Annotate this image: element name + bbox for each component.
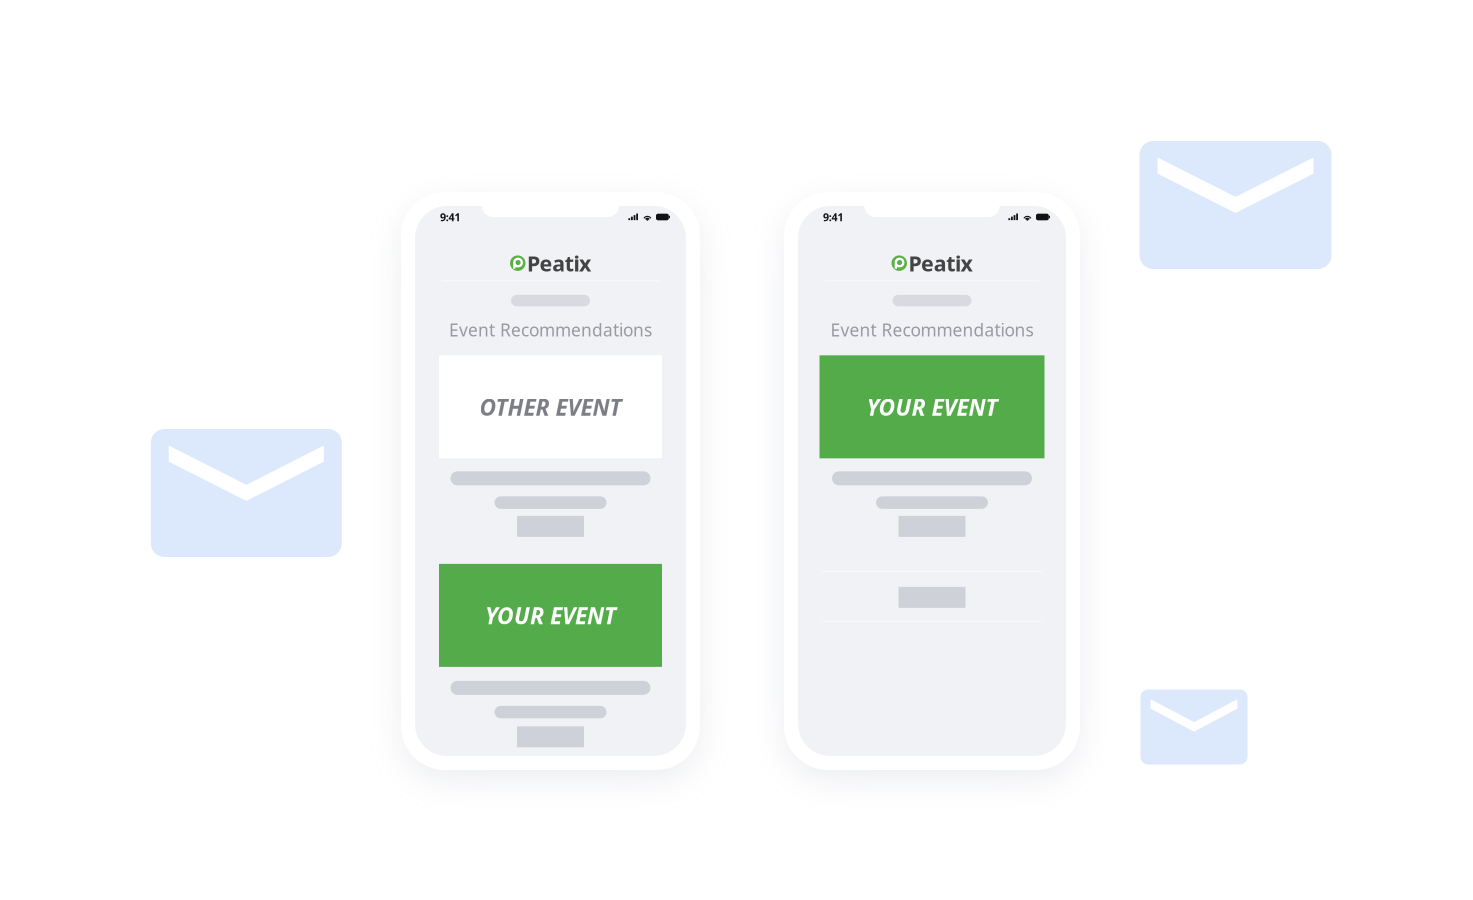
staticText: Peatix [527,249,591,277]
staticText: YOUR EVENT [485,600,616,630]
staticText: YOUR EVENT [866,392,997,422]
button[interactable]: YOUR EVENT [439,564,662,667]
button[interactable]: YOUR EVENT [819,355,1044,458]
staticText: Event Recommendations [449,318,652,341]
staticText: OTHER EVENT [479,392,621,422]
staticText: 9:41 [823,210,843,224]
staticText: 9:41 [440,210,460,224]
staticText: Peatix [908,249,972,277]
staticText: Event Recommendations [830,318,1033,341]
button[interactable]: OTHER EVENT [439,355,662,458]
